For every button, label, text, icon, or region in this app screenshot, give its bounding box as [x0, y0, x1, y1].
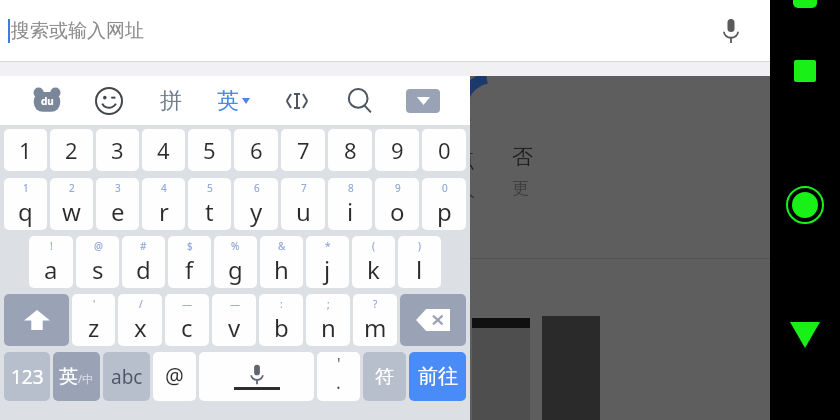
- button[interactable]: 123: [4, 352, 50, 401]
- staticText: &: [278, 239, 286, 253]
- staticText: y: [250, 195, 263, 228]
- button[interactable]: %: [214, 236, 257, 288]
- staticText: 更: [512, 178, 529, 199]
- button[interactable]: Search: [328, 76, 391, 125]
- button[interactable]: Space: [199, 352, 314, 401]
- button[interactable]: 5: [188, 129, 231, 171]
- button[interactable]: 符: [363, 352, 406, 401]
- staticText: 否: [512, 144, 533, 170]
- staticText: abc: [111, 364, 143, 390]
- button[interactable]: #: [122, 236, 165, 288]
- staticText: 1: [23, 181, 29, 195]
- button[interactable]: 8: [328, 129, 372, 171]
- button[interactable]: *: [306, 236, 349, 288]
- staticText: 9: [391, 135, 404, 165]
- button[interactable]: $: [168, 236, 211, 288]
- button[interactable]: Baidu input: [16, 76, 78, 125]
- button[interactable]: 8: [328, 178, 372, 230]
- button[interactable]: /: [118, 294, 162, 346]
- staticText: j: [324, 253, 331, 286]
- button[interactable]: !: [29, 236, 73, 288]
- button[interactable]: 2: [50, 178, 93, 230]
- staticText: 2: [65, 135, 78, 165]
- button[interactable]: Home: [786, 186, 824, 224]
- button[interactable]: Shift: [4, 294, 69, 346]
- staticText: ?: [373, 297, 378, 311]
- button[interactable]: Back: [790, 322, 820, 348]
- staticText: 7: [297, 135, 310, 165]
- staticText: 搜索或输入网址: [11, 19, 144, 43]
- button[interactable]: 1: [4, 129, 47, 171]
- staticText: 3: [111, 135, 124, 165]
- button[interactable]: 3: [96, 178, 139, 230]
- button[interactable]: 英: [53, 352, 100, 401]
- button[interactable]: 0: [422, 129, 466, 171]
- button[interactable]: :: [259, 294, 303, 346]
- button[interactable]: Move cursor: [265, 76, 328, 125]
- staticText: —: [182, 297, 192, 311]
- button[interactable]: —: [165, 294, 209, 346]
- staticText: 6: [254, 181, 260, 195]
- button[interactable]: 拼: [140, 76, 202, 125]
- button[interactable]: 7: [281, 178, 325, 230]
- button[interactable]: 5: [188, 178, 231, 230]
- button[interactable]: @: [76, 236, 119, 288]
- button[interactable]: 6: [234, 178, 278, 230]
- button[interactable]: &: [260, 236, 303, 288]
- button[interactable]: (: [352, 236, 395, 288]
- staticText: 英: [217, 87, 239, 115]
- staticText: —: [230, 297, 240, 311]
- button[interactable]: 3: [96, 129, 139, 171]
- staticText: i: [347, 195, 354, 228]
- button[interactable]: @: [153, 352, 196, 401]
- staticText: (: [372, 239, 375, 253]
- staticText: u: [296, 195, 311, 228]
- staticText: %: [231, 239, 240, 253]
- button[interactable]: 1: [4, 178, 47, 230]
- staticText: 前往: [418, 364, 458, 389]
- staticText: 点: [455, 148, 475, 173]
- button[interactable]: ?: [353, 294, 397, 346]
- staticText: a: [44, 253, 58, 286]
- button[interactable]: 搜索或输入网址: [0, 0, 770, 62]
- button[interactable]: Voice search: [714, 14, 748, 48]
- staticText: 7: [301, 181, 307, 195]
- staticText: g: [228, 253, 243, 286]
- staticText: e: [111, 195, 125, 228]
- staticText: 2: [69, 181, 75, 195]
- staticText: #: [140, 239, 147, 253]
- button[interactable]: ;: [306, 294, 350, 346]
- button[interactable]: 4: [142, 178, 185, 230]
- staticText: n: [321, 311, 336, 344]
- staticText: ': [93, 297, 96, 311]
- button[interactable]: ): [398, 236, 441, 288]
- button[interactable]: 4: [142, 129, 185, 171]
- button[interactable]: —: [212, 294, 256, 346]
- button[interactable]: Hide keyboard: [391, 76, 454, 125]
- staticText: 符: [375, 365, 394, 389]
- button[interactable]: 6: [234, 129, 278, 171]
- button[interactable]: 英: [202, 76, 265, 125]
- button[interactable]: Emoji: [78, 76, 140, 125]
- staticText: t: [205, 195, 214, 228]
- staticText: k: [367, 253, 380, 286]
- staticText: $: [187, 239, 193, 253]
- button[interactable]: 前往: [409, 352, 466, 401]
- staticText: 3: [115, 181, 121, 195]
- button[interactable]: Recents: [793, 0, 817, 8]
- button[interactable]: ': [317, 352, 360, 401]
- staticText: q: [18, 195, 33, 228]
- staticText: r: [159, 195, 169, 228]
- button[interactable]: ': [72, 294, 115, 346]
- button[interactable]: 9: [375, 178, 419, 230]
- button[interactable]: Backspace: [400, 294, 466, 346]
- staticText: p: [437, 195, 452, 228]
- button[interactable]: Stop: [794, 60, 816, 82]
- button[interactable]: 9: [375, 129, 419, 171]
- button[interactable]: abc: [103, 352, 150, 401]
- button[interactable]: 0: [422, 178, 466, 230]
- button[interactable]: 2: [50, 129, 93, 171]
- staticText: 人: [458, 180, 475, 201]
- button[interactable]: 7: [281, 129, 325, 171]
- staticText: x: [134, 311, 147, 344]
